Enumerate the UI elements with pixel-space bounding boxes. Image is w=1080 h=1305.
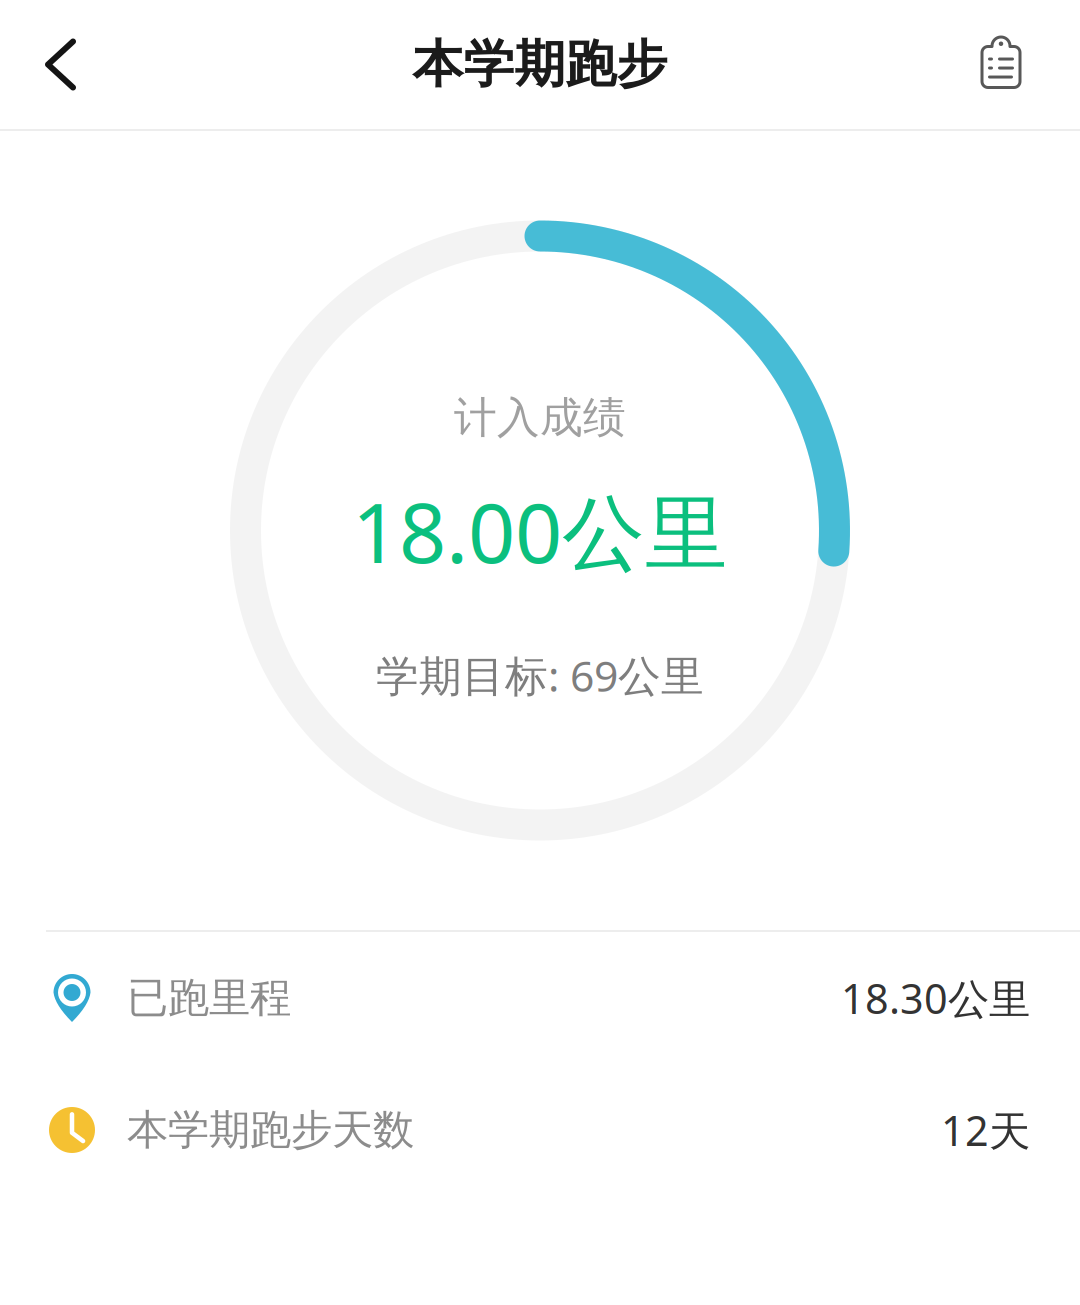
staticText: 学期目标: 69公里	[376, 647, 704, 703]
button[interactable]: Back	[0, 13, 117, 115]
staticText: 本学期跑步天数	[127, 1105, 414, 1155]
staticText: 12天	[941, 1103, 1030, 1157]
staticText: 18.30公里	[841, 971, 1030, 1025]
staticText: 本学期跑步	[412, 33, 667, 96]
button[interactable]: 本学期跑步天数	[0, 1064, 1080, 1196]
staticText: 计入成绩	[454, 392, 626, 444]
staticText: 18.00公里	[352, 476, 728, 586]
button[interactable]: Records	[942, 17, 1080, 111]
staticText: 已跑里程	[127, 973, 291, 1023]
button[interactable]: 已跑里程	[0, 932, 1080, 1064]
